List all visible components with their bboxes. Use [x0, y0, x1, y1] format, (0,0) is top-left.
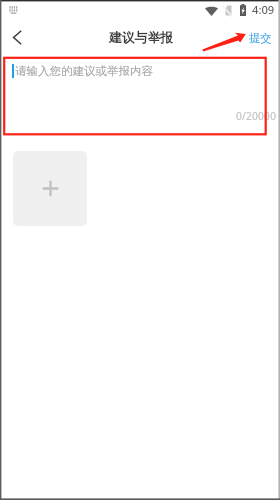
button[interactable]: Add photo [13, 151, 87, 226]
button[interactable]: 提交 [241, 23, 280, 53]
staticText: 建议与举报 [109, 30, 173, 46]
button[interactable]: Back [2, 22, 32, 52]
staticText: 0/20000 [236, 109, 277, 123]
staticText: 请输入您的建议或举报内容 [15, 64, 153, 78]
staticText: 提交 [249, 31, 272, 45]
staticText: 4:09 [252, 2, 275, 17]
